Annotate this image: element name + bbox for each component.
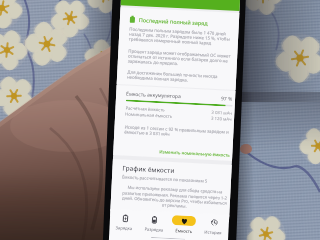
button[interactable]: История (198, 216, 229, 237)
staticText: Изменить номинальную ёмкость (159, 148, 230, 158)
button[interactable]: Зарядка (109, 212, 139, 232)
staticText: Ёмкость аккумулятора (126, 90, 181, 100)
staticText: Ёмкость рассчитывается по показаниям 5 (122, 174, 208, 185)
staticText: Разрядка (144, 227, 164, 233)
staticText: Процент заряда может отображаемый ОС мож… (128, 48, 235, 69)
staticText: Для достижения большей точности иногда н… (127, 69, 234, 85)
button[interactable]: Ёмкость (168, 215, 199, 235)
button[interactable]: Изменить номинальную ёмкость (123, 145, 230, 159)
staticText: Номинальная ёмкость (125, 110, 173, 119)
staticText: Ёмкость (175, 228, 193, 235)
staticText: 3 120 мАч (211, 115, 232, 122)
staticText: Зарядка (115, 225, 133, 232)
button[interactable]: Разрядка (138, 213, 169, 234)
staticText: Исходя из 1 сессии с 92 % правильным зар… (124, 123, 232, 140)
staticText: График ёмкости (122, 163, 175, 175)
staticText: 3 031 мАч (211, 109, 233, 116)
staticText: 97 % (221, 95, 233, 103)
staticText: Последним полным зарядом было 1 470 дней… (129, 26, 236, 47)
staticText: Расчётная ёмкость (125, 104, 166, 112)
staticText: История (204, 230, 222, 236)
staticText: Мы используем рекламу для сбора средств … (121, 184, 228, 211)
staticText: Последний полный заряд (139, 16, 208, 26)
